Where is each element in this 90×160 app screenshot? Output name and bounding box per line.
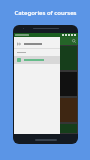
button[interactable] — [15, 98, 77, 122]
button[interactable] — [15, 124, 77, 133]
button[interactable]: Search — [14, 37, 78, 45]
button[interactable] — [15, 46, 77, 70]
button[interactable]: Search — [71, 38, 77, 44]
button[interactable] — [15, 72, 77, 96]
button[interactable] — [14, 39, 60, 48]
button[interactable] — [14, 56, 60, 64]
staticText: Categories of courses — [14, 9, 77, 17]
